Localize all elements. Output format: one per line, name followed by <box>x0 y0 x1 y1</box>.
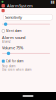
staticText: Use siren when alarm <box>2 68 31 71</box>
button[interactable]: Silent alarm <box>0 29 56 33</box>
button[interactable]: Call for alarm <box>0 59 56 63</box>
staticText: Sensitivity <box>5 14 22 20</box>
staticText: AlarmSystem <box>7 3 33 8</box>
staticText: Volume 75% <box>2 45 23 50</box>
staticText: Alarm sound <box>2 35 25 40</box>
staticText: Call for alarm <box>6 59 23 63</box>
staticText: Silent alarm <box>6 29 21 33</box>
staticText: ▮▮ <box>50 0 54 4</box>
staticText: Alarm2 <box>2 40 11 44</box>
staticText: Stop alarm <box>2 64 15 68</box>
